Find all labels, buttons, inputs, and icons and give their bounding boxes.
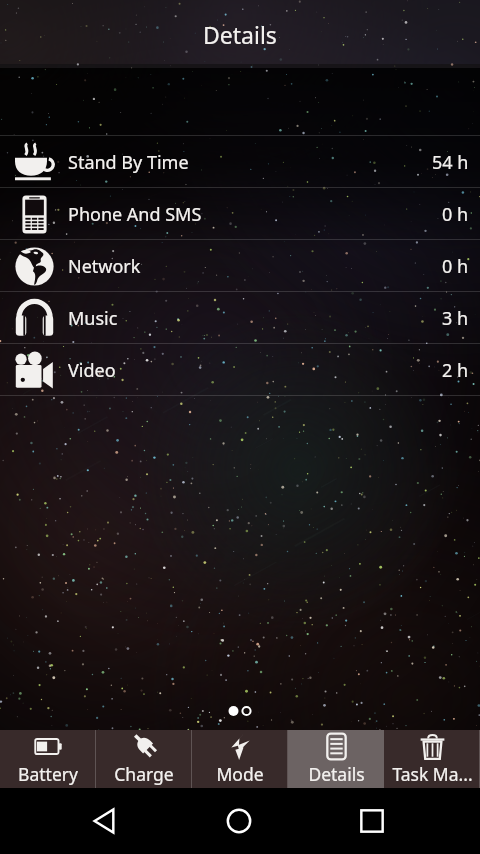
button[interactable]: Battery: [0, 730, 96, 788]
staticText: 0 h: [442, 254, 469, 279]
button[interactable]: Phone And SMS: [0, 188, 480, 240]
button[interactable]: Video: [0, 344, 480, 396]
button[interactable]: Recent apps: [346, 795, 398, 847]
staticText: 2 h: [442, 358, 469, 383]
button[interactable]: Stand By Time: [0, 136, 480, 188]
staticText: Task Ma...: [392, 762, 473, 786]
staticText: Phone And SMS: [68, 202, 202, 227]
button[interactable]: Task Ma...: [384, 730, 480, 788]
staticText: Battery: [18, 762, 78, 786]
staticText: 54 h: [432, 150, 469, 175]
button[interactable]: Music: [0, 292, 480, 344]
staticText: Details: [203, 19, 277, 50]
button[interactable]: Back: [79, 795, 131, 847]
button[interactable]: Details: [0, 0, 480, 68]
button[interactable]: Home: [213, 795, 265, 847]
staticText: Details: [308, 762, 365, 786]
staticText: Mode: [216, 762, 264, 786]
staticText: Network: [68, 254, 141, 279]
button[interactable]: Charge: [96, 730, 192, 788]
staticText: Charge: [114, 762, 174, 786]
button[interactable]: Network: [0, 240, 480, 292]
staticText: Video: [68, 358, 116, 383]
button[interactable]: Mode: [192, 730, 288, 788]
staticText: Stand By Time: [68, 150, 189, 175]
button[interactable]: Details: [288, 730, 384, 788]
staticText: 0 h: [442, 202, 469, 227]
staticText: 3 h: [442, 306, 469, 331]
staticText: Music: [68, 306, 118, 331]
